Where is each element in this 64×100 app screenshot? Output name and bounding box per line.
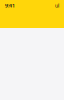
staticText: ul (55, 2, 59, 9)
staticText: 9:41 (5, 2, 15, 9)
